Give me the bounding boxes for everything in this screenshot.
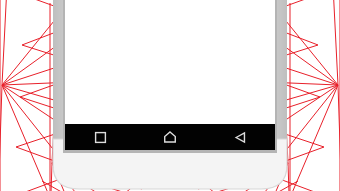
button[interactable]: Recent apps: [65, 124, 135, 150]
button[interactable]: Home: [135, 124, 205, 150]
button[interactable]: Back: [205, 124, 275, 150]
